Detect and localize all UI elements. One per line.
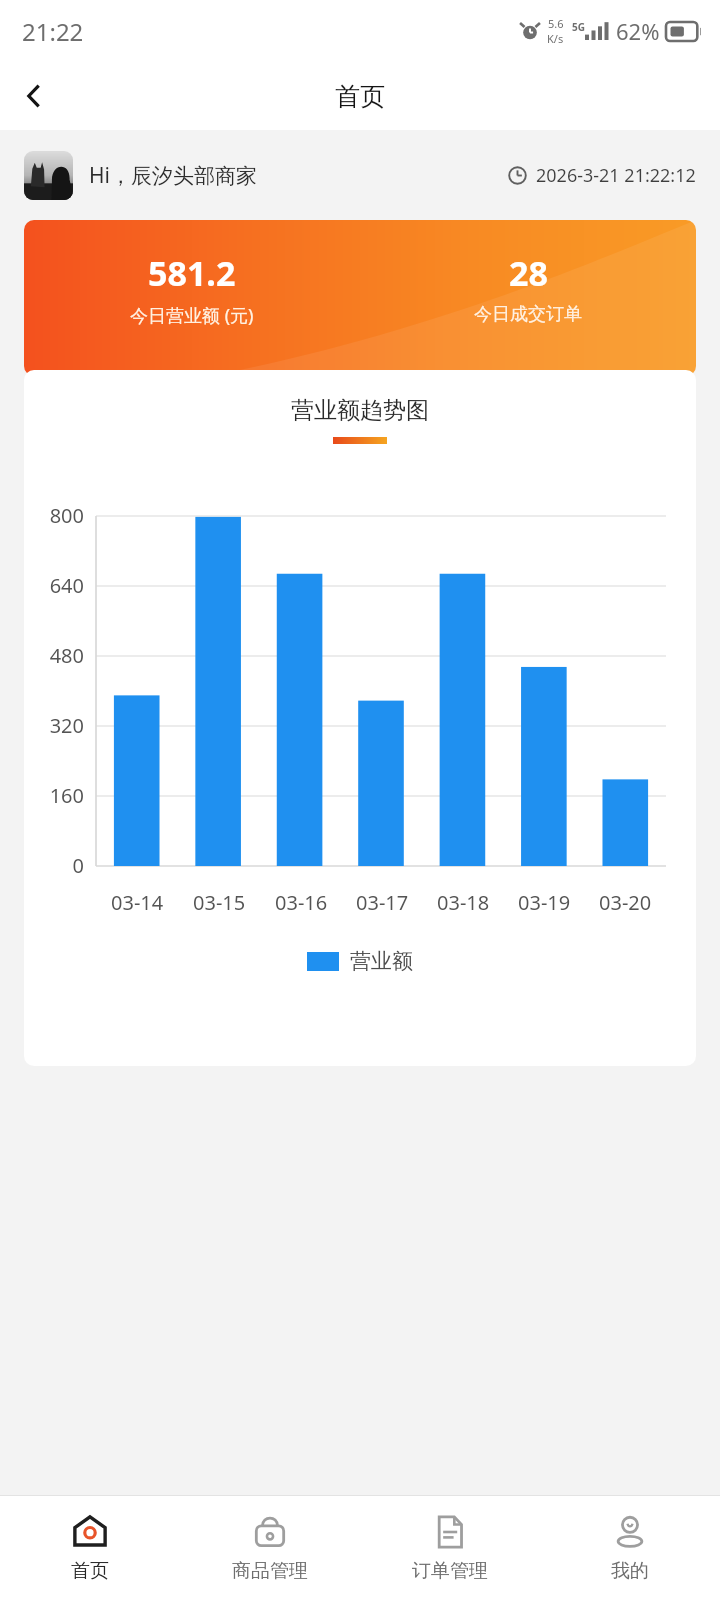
staticText: 28 [509, 250, 548, 296]
staticText: 首页 [335, 81, 385, 112]
staticText: 营业额趋势图 [24, 396, 696, 425]
staticText: 640 [24, 572, 84, 599]
staticText: 03-16 [275, 889, 328, 916]
button[interactable]: 订单管理 [360, 1496, 540, 1600]
staticText: 581.2 [148, 250, 236, 296]
staticText: 今日成交订单 [474, 303, 582, 326]
staticText: 商品管理 [232, 1559, 308, 1583]
staticText: 320 [24, 712, 84, 739]
staticText: 21:22 [22, 15, 84, 48]
staticText: 03-19 [518, 889, 571, 916]
staticText: 03-17 [356, 889, 409, 916]
button[interactable]: Back [8, 70, 60, 122]
button[interactable]: 首页 [0, 1496, 180, 1600]
staticText: 03-15 [193, 889, 246, 916]
button[interactable]: 我的 [540, 1496, 720, 1600]
staticText: 我的 [611, 1559, 649, 1583]
staticText: 0 [24, 852, 84, 879]
staticText: 480 [24, 642, 84, 669]
button[interactable]: Profile photo [24, 151, 73, 200]
staticText: 800 [24, 502, 84, 529]
staticText: 62% [616, 16, 660, 46]
button[interactable]: 581.2 [24, 220, 696, 376]
staticText: 首页 [71, 1559, 109, 1583]
staticText: 5G [572, 20, 585, 34]
staticText: 2026-3-21 21:22:12 [536, 163, 696, 188]
staticText: 03-18 [437, 889, 490, 916]
staticText: K/s [547, 31, 564, 46]
staticText: Hi，辰汐头部商家 [89, 161, 257, 190]
staticText: 160 [24, 782, 84, 809]
button[interactable]: 商品管理 [180, 1496, 360, 1600]
staticText: 5.6 [548, 16, 564, 31]
staticText: 营业额 [350, 948, 413, 974]
staticText: 03-20 [599, 889, 652, 916]
staticText: 03-14 [111, 889, 164, 916]
staticText: 订单管理 [412, 1559, 488, 1583]
staticText: 今日营业额 (元) [130, 303, 254, 328]
